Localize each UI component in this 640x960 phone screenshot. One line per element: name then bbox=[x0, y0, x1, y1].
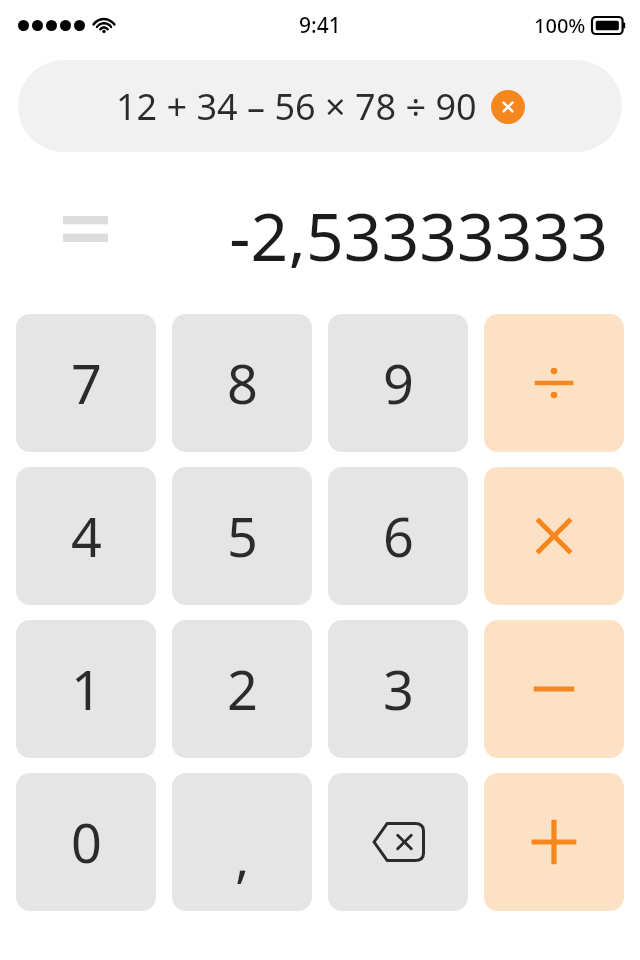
staticText: 2 bbox=[227, 652, 258, 726]
button[interactable]: 8 bbox=[172, 314, 312, 452]
button[interactable]: Backspace bbox=[328, 773, 468, 911]
button[interactable]: 6 bbox=[328, 467, 468, 605]
staticText: 0 bbox=[71, 805, 102, 879]
button[interactable]: 4 bbox=[16, 467, 156, 605]
staticText: 6 bbox=[383, 499, 414, 573]
staticText: 7 bbox=[71, 346, 102, 420]
button[interactable]: 5 bbox=[172, 467, 312, 605]
staticText: 5 bbox=[227, 499, 258, 573]
button[interactable]: Divide bbox=[484, 314, 624, 452]
button[interactable]: Minus bbox=[484, 620, 624, 758]
staticText: 9 bbox=[383, 346, 414, 420]
button[interactable]: 7 bbox=[16, 314, 156, 452]
button[interactable]: Decimal separator bbox=[172, 773, 312, 911]
staticText: , bbox=[235, 819, 250, 893]
button[interactable]: Multiply bbox=[484, 467, 624, 605]
staticText: 9:41 bbox=[299, 11, 341, 40]
button[interactable]: 12 + 34 – 56 × 78 ÷ 90 bbox=[18, 60, 622, 152]
button[interactable]: 9 bbox=[328, 314, 468, 452]
staticText: -2,53333333 bbox=[229, 190, 608, 268]
staticText: 1 bbox=[71, 652, 102, 726]
staticText: 4 bbox=[71, 499, 102, 573]
button[interactable]: 2 bbox=[172, 620, 312, 758]
button[interactable]: Plus bbox=[484, 773, 624, 911]
staticText: 8 bbox=[227, 346, 258, 420]
button[interactable]: 0 bbox=[16, 773, 156, 911]
button[interactable]: Clear expression bbox=[491, 90, 525, 124]
staticText: 3 bbox=[383, 652, 414, 726]
staticText: 100% bbox=[534, 12, 586, 39]
button[interactable]: 3 bbox=[328, 620, 468, 758]
button[interactable]: 1 bbox=[16, 620, 156, 758]
staticText: 12 + 34 – 56 × 78 ÷ 90 bbox=[116, 82, 477, 131]
